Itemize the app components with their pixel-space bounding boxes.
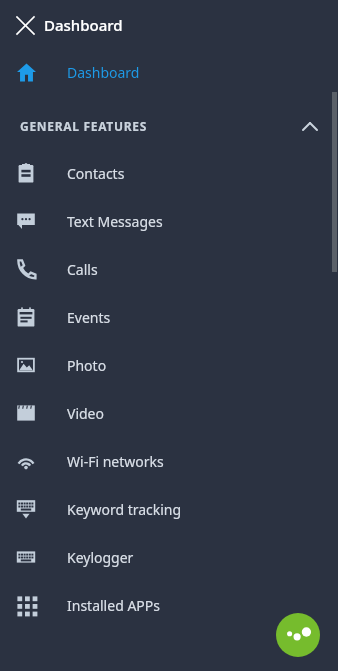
button[interactable]: Wi-Fi networks [0, 437, 338, 485]
staticText: Contacts [67, 164, 125, 183]
button[interactable]: Calls [0, 245, 338, 293]
button[interactable]: Video [0, 389, 338, 437]
staticText: Text Messages [67, 212, 163, 231]
button[interactable]: Installed APPs [0, 581, 338, 629]
staticText: Photo [67, 356, 107, 375]
staticText: Keylogger [67, 548, 134, 567]
button[interactable]: Text Messages [0, 197, 338, 245]
staticText: Video [67, 404, 104, 423]
staticText: Calls [67, 260, 98, 279]
staticText: Dashboard [67, 63, 140, 82]
button[interactable]: GENERAL FEATURES [0, 108, 338, 144]
button[interactable]: Contacts [0, 149, 338, 197]
button[interactable]: Chat support [276, 613, 320, 657]
button[interactable]: Keylogger [0, 533, 338, 581]
staticText: GENERAL FEATURES [20, 118, 148, 134]
button[interactable]: Photo [0, 341, 338, 389]
staticText: Dashboard [44, 15, 123, 35]
staticText: Events [67, 308, 111, 327]
button[interactable]: Close [8, 8, 42, 42]
staticText: Keyword tracking [67, 500, 182, 519]
button[interactable]: Dashboard [0, 50, 338, 94]
button[interactable]: Events [0, 293, 338, 341]
staticText: Installed APPs [67, 596, 160, 615]
staticText: Wi-Fi networks [67, 452, 164, 471]
button[interactable]: Keyword tracking [0, 485, 338, 533]
